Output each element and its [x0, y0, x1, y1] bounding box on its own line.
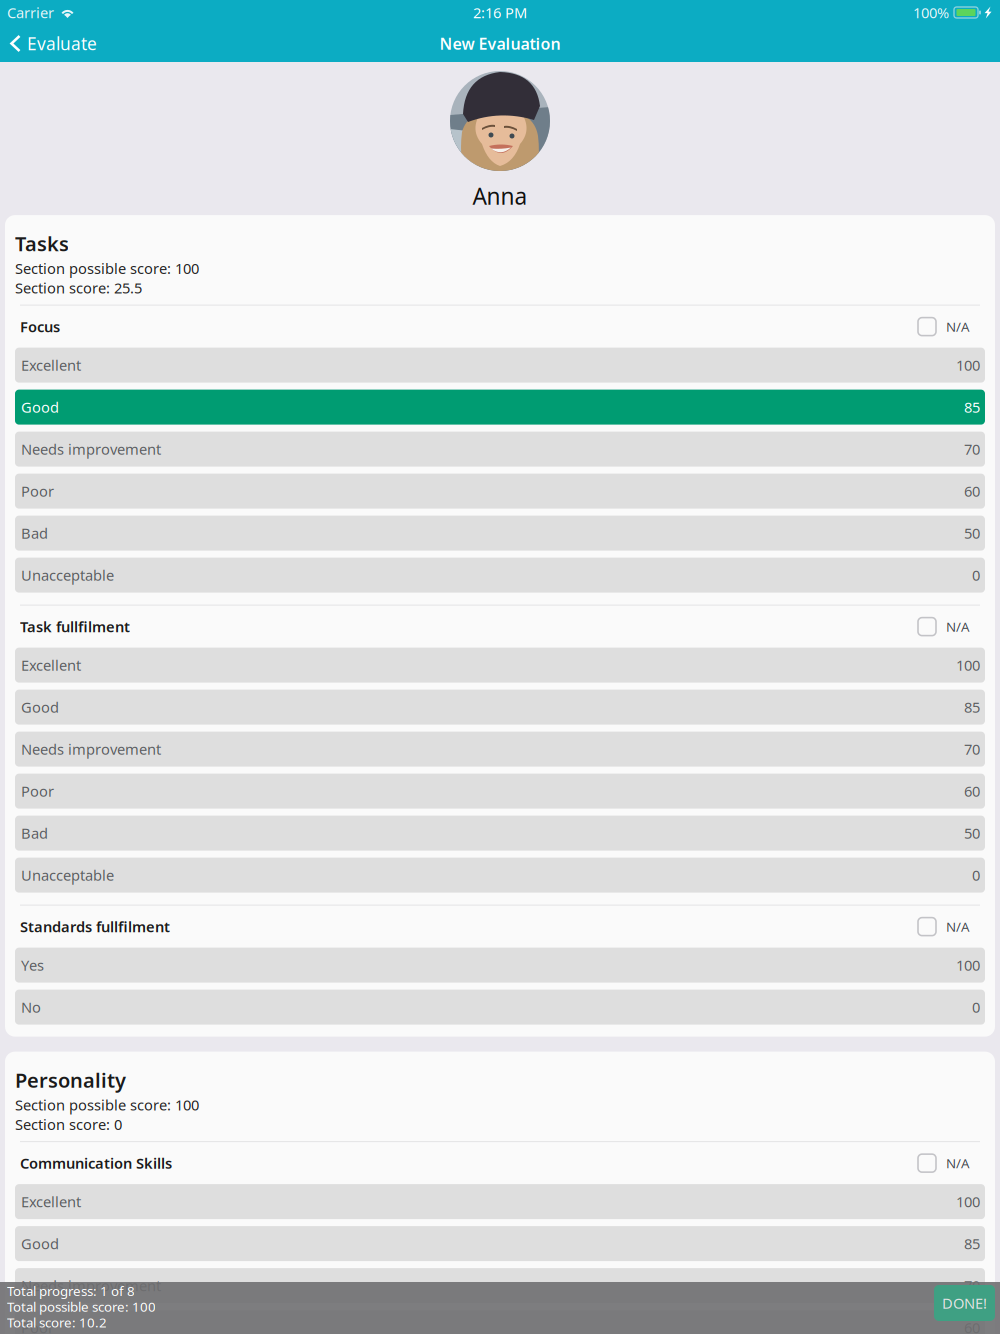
button[interactable]: Good	[15, 1226, 985, 1261]
staticText: N/A	[946, 1154, 970, 1172]
button[interactable]: Good	[15, 690, 985, 725]
staticText: No	[21, 997, 41, 1017]
staticText: Excellent	[21, 1192, 81, 1211]
staticText: 0	[972, 865, 980, 885]
staticText: Evaluate	[27, 32, 97, 55]
staticText: Communication Skills	[20, 1153, 172, 1173]
staticText: 70	[964, 1276, 980, 1295]
button[interactable]: Good	[15, 390, 985, 425]
staticText: 100	[956, 955, 980, 975]
staticText: 60	[964, 481, 980, 501]
staticText: 100	[956, 1192, 980, 1211]
staticText: 70	[964, 439, 980, 459]
staticText: 0	[972, 997, 980, 1017]
staticText: 60	[964, 1318, 980, 1334]
staticText: 70	[964, 739, 980, 759]
staticText: Task fullfilment	[20, 617, 130, 636]
staticText: N/A	[946, 318, 970, 335]
staticText: Good	[21, 1234, 59, 1253]
button[interactable]: Needs improvement	[15, 1268, 985, 1303]
button[interactable]: Excellent	[15, 648, 985, 683]
staticText: Tasks	[15, 230, 69, 257]
button[interactable]: Unacceptable	[15, 558, 985, 593]
staticText: 100	[956, 355, 980, 375]
button[interactable]: Evaluate	[0, 25, 105, 62]
button[interactable]: Bad	[15, 816, 985, 851]
staticText: Section score: 25.5	[15, 278, 142, 298]
button[interactable]: Poor	[15, 1310, 985, 1334]
staticText: Unacceptable	[21, 865, 114, 885]
staticText: Yes	[21, 955, 44, 975]
staticText: New Evaluation	[439, 33, 560, 54]
staticText: DONE!	[942, 1293, 987, 1313]
button[interactable]: Needs improvement	[15, 432, 985, 467]
staticText: Needs improvement	[21, 439, 161, 459]
button[interactable]: Yes	[15, 948, 985, 983]
staticText: Good	[21, 697, 59, 717]
staticText: Focus	[20, 317, 60, 336]
button[interactable]: Needs improvement	[15, 732, 985, 767]
staticText: 85	[964, 1234, 980, 1253]
button[interactable]: Bad	[15, 516, 985, 551]
staticText: 0	[972, 565, 980, 585]
button[interactable]: N/A	[918, 918, 970, 936]
staticText: Excellent	[21, 355, 81, 375]
button[interactable]: Poor	[15, 474, 985, 509]
staticText: Excellent	[21, 655, 81, 675]
staticText: Total progress: 1 of 8 Total possible sc…	[7, 1282, 156, 1331]
staticText: Section possible score: 100	[15, 259, 199, 278]
button[interactable]: N/A	[918, 618, 970, 636]
button[interactable]: N/A	[918, 1154, 970, 1172]
staticText: Needs improvement	[21, 739, 161, 759]
staticText: Unacceptable	[21, 565, 114, 585]
button[interactable]: Excellent	[15, 348, 985, 383]
staticText: Section possible score: 100	[15, 1095, 199, 1115]
staticText: Poor	[21, 781, 54, 801]
staticText: Bad	[21, 823, 48, 843]
staticText: 60	[964, 781, 980, 801]
staticText: 85	[964, 697, 980, 717]
staticText: Needs improvement	[21, 1276, 161, 1295]
button[interactable]: Excellent	[15, 1184, 985, 1219]
staticText: Anna	[472, 181, 527, 211]
staticText: N/A	[946, 618, 970, 635]
button[interactable]: Poor	[15, 774, 985, 809]
staticText: Section score: 0	[15, 1115, 122, 1134]
button[interactable]: Unacceptable	[15, 858, 985, 893]
staticText: Standards fullfilment	[20, 917, 170, 936]
staticText: Bad	[21, 523, 48, 543]
staticText: 85	[964, 397, 980, 417]
staticText: 50	[964, 523, 980, 543]
staticText: Poor	[21, 481, 54, 501]
staticText: N/A	[946, 918, 970, 935]
staticText: 100	[956, 655, 980, 675]
staticText: Carrier	[7, 3, 54, 22]
button[interactable]: No	[15, 990, 985, 1025]
staticText: 50	[964, 823, 980, 843]
staticText: 2:16 PM	[473, 3, 527, 22]
staticText: Poor	[21, 1318, 54, 1334]
staticText: Good	[21, 397, 59, 417]
button[interactable]: N/A	[918, 318, 970, 336]
staticText: Personality	[15, 1067, 126, 1093]
staticText: 100%	[913, 3, 949, 22]
button[interactable]: DONE!	[934, 1285, 995, 1321]
